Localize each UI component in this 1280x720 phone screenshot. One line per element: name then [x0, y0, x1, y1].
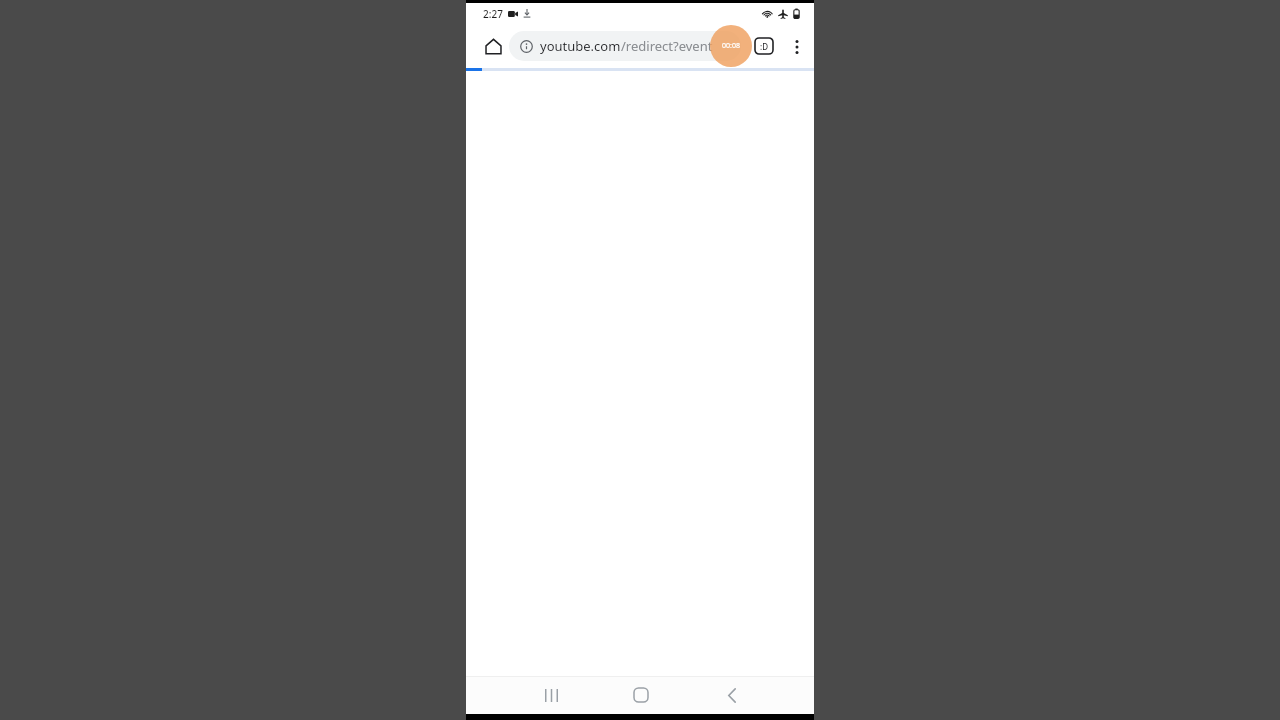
- button[interactable]: Back: [712, 676, 752, 714]
- button[interactable]: Profile: [744, 26, 784, 66]
- button[interactable]: More options: [779, 29, 814, 64]
- staticText: :D: [760, 41, 769, 52]
- staticText: 2:27: [483, 7, 503, 21]
- staticText: /redirect?event: [621, 37, 713, 55]
- button[interactable]: youtube.com: [509, 31, 741, 61]
- button[interactable]: Home: [621, 676, 661, 714]
- staticText: 00:08: [722, 41, 740, 51]
- staticText: youtube.com: [540, 37, 621, 55]
- button[interactable]: Recent apps: [531, 676, 571, 714]
- button[interactable]: Home: [472, 25, 514, 67]
